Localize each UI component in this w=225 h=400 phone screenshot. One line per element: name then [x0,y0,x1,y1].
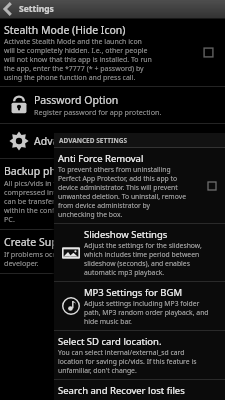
button[interactable]: MP3 Settings for BGM [54,282,225,330]
staticText: MP3 Settings for BGM [84,286,183,299]
staticText: You can select internal/external_sd card… [58,348,197,375]
staticText: Adjust the settings for the slideshow, w… [84,241,202,277]
staticText: Create Support Ticket [4,235,111,249]
button[interactable]: Stealth Mode (Hide Icon) [0,19,225,86]
staticText: Activate Stealth Mode and the launch ico… [4,37,152,82]
button[interactable]: Anti Force Removal [54,148,225,223]
staticText: All pics/vids in the vault are compresse… [4,178,129,224]
staticText: Stealth Mode (Hide Icon) [4,23,126,37]
staticText: Register password for app protection. [34,107,162,117]
staticText: To prevent others from uninstalling Perf… [58,165,186,219]
staticText: Password Option [34,93,119,107]
button[interactable]: Search and Recover lost files [54,380,225,400]
staticText: Select SD card location. [58,335,162,348]
staticText: Adjust settings including MP3 folder pat… [84,299,209,326]
staticText: Settings [19,3,54,15]
button[interactable]: Select SD card location. [54,331,225,379]
staticText: Search and Recover lost files [58,384,185,396]
button[interactable]: Back [0,0,225,18]
staticText: Advanced settings [34,134,125,148]
button[interactable]: Backup photos/videos [0,159,225,229]
staticText: Slideshow Settings [84,228,168,241]
button[interactable]: Slideshow Settings [54,224,225,281]
staticText: If problems occur, contact the developer… [4,249,104,268]
staticText: ADVANCED SETTINGS [59,136,128,145]
button[interactable]: Password Option [0,87,225,123]
staticText: Backup photos/videos [4,164,114,178]
staticText: Anti Force Removal [58,152,144,165]
button[interactable]: Create Support Ticket [0,230,225,273]
button[interactable]: Advanced settings [0,124,225,158]
